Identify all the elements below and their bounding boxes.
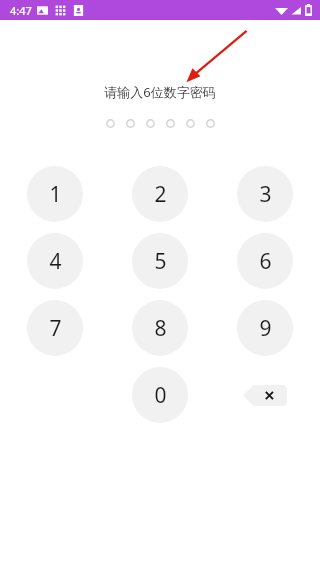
staticText: 8 <box>154 314 167 343</box>
staticText: 3 <box>259 180 272 209</box>
staticText: 1 <box>49 180 62 209</box>
button[interactable]: Backspace <box>237 367 293 423</box>
staticText: 4 <box>49 247 62 276</box>
button[interactable]: 8 <box>132 300 188 356</box>
staticText: 7 <box>49 314 62 343</box>
button[interactable]: 1 <box>27 166 83 222</box>
button[interactable]: 7 <box>27 300 83 356</box>
button[interactable]: 2 <box>132 166 188 222</box>
button[interactable]: 9 <box>237 300 293 356</box>
button[interactable]: 3 <box>237 166 293 222</box>
staticText: 6 <box>259 247 272 276</box>
button[interactable]: 6 <box>237 233 293 289</box>
staticText: 请输入6位数字密码 <box>104 83 216 101</box>
staticText: 4:47 <box>10 3 32 18</box>
staticText: 5 <box>154 247 167 276</box>
staticText: 0 <box>154 381 167 410</box>
staticText: 9 <box>259 314 272 343</box>
button[interactable]: 4 <box>27 233 83 289</box>
staticText: 2 <box>154 180 167 209</box>
button[interactable]: 0 <box>132 367 188 423</box>
button[interactable]: 5 <box>132 233 188 289</box>
